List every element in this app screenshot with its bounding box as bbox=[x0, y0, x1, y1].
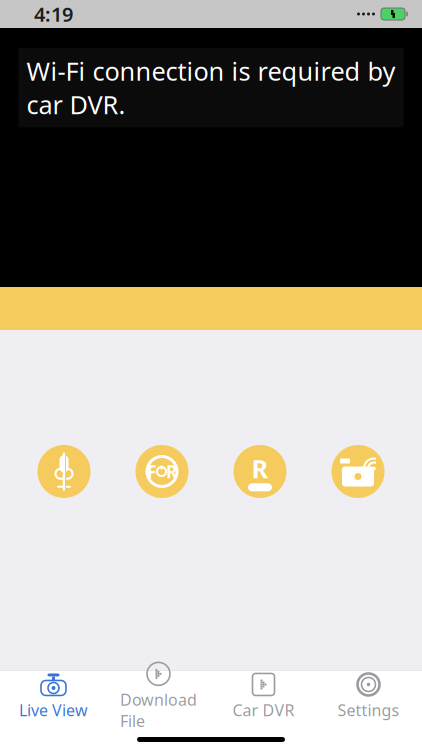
staticText: 4:19 bbox=[34, 1, 73, 27]
staticText: Live View bbox=[19, 699, 88, 721]
staticText: Download File bbox=[120, 689, 197, 731]
button[interactable]: Car DVR bbox=[211, 672, 316, 722]
staticText: R bbox=[166, 460, 177, 483]
button[interactable]: Record bbox=[232, 445, 288, 498]
staticText: Wi-Fi connection is required by car DVR. bbox=[26, 54, 395, 121]
button[interactable]: Mute microphone bbox=[36, 445, 92, 498]
button[interactable]: Live View bbox=[1, 672, 106, 722]
button[interactable]: Settings bbox=[316, 672, 421, 722]
staticText: R bbox=[251, 452, 268, 485]
staticText: Car DVR bbox=[232, 699, 294, 721]
button[interactable]: Switch front and rear camera bbox=[134, 445, 190, 498]
staticText: Settings bbox=[337, 699, 399, 721]
button[interactable]: Download File bbox=[106, 672, 211, 722]
staticText: F bbox=[147, 460, 157, 483]
button[interactable]: Take photo bbox=[330, 445, 386, 498]
